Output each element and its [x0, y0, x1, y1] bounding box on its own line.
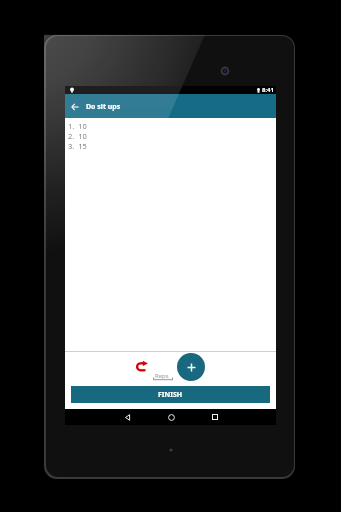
staticText: Do sit ups: [86, 102, 121, 112]
staticText: FINISH: [158, 390, 183, 400]
button[interactable]: Reset reps: [132, 357, 150, 375]
staticText: 3. 15: [68, 141, 87, 151]
button[interactable]: Home: [149, 409, 193, 425]
staticText: 2. 10: [68, 131, 87, 141]
staticText: 1. 10: [68, 121, 87, 131]
button[interactable]: Navigate up: [66, 98, 83, 115]
button[interactable]: Add set: [177, 353, 205, 381]
button[interactable]: FINISH: [71, 386, 270, 403]
button[interactable]: Recent apps: [193, 409, 237, 425]
button[interactable]: Back: [105, 409, 149, 425]
staticText: Reps: [155, 372, 169, 380]
button[interactable]: Reps: [153, 371, 173, 383]
staticText: 8:41: [262, 86, 274, 94]
